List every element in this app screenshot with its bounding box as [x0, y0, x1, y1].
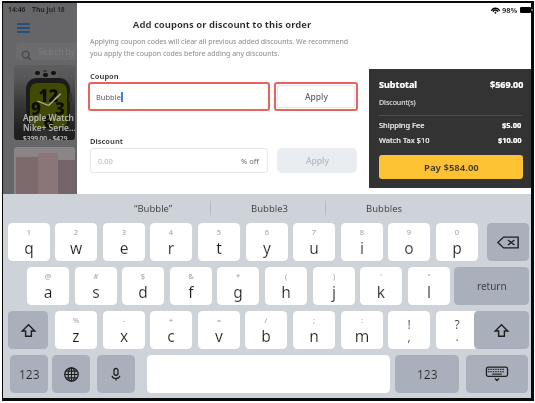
button[interactable]: )	[313, 267, 355, 305]
staticText: a	[27, 281, 69, 302]
button[interactable]: -	[103, 311, 145, 349]
button[interactable]: 2	[55, 223, 97, 261]
button[interactable]: 0.00	[90, 148, 268, 173]
staticText: Subtotal	[379, 78, 418, 90]
staticText: (	[265, 271, 307, 281]
button[interactable]: 0	[436, 223, 478, 261]
staticText: 3	[103, 227, 145, 237]
staticText: +	[150, 315, 192, 325]
staticText: 4	[150, 227, 192, 237]
staticText: e	[103, 237, 145, 258]
staticText: 2	[55, 227, 97, 237]
staticText: w	[55, 237, 97, 258]
button[interactable]: 7	[293, 223, 335, 261]
button[interactable]: +	[150, 311, 192, 349]
button[interactable]: Return	[454, 267, 529, 305]
staticText: Shipping Fee	[379, 120, 425, 130]
staticText: k	[360, 281, 402, 302]
staticText: Apple Watch	[23, 112, 74, 124]
staticText: j	[313, 281, 355, 302]
button[interactable]: @	[27, 267, 69, 305]
button[interactable]: ;	[293, 311, 335, 349]
button[interactable]: Hide keyboard	[466, 355, 528, 393]
staticText: 3	[55, 97, 65, 120]
button[interactable]: Shift	[8, 311, 48, 349]
button[interactable]: ?	[436, 311, 478, 349]
button[interactable]: “Bubble”	[95, 194, 211, 222]
staticText: ,	[388, 328, 430, 344]
staticText: l	[408, 281, 450, 302]
button[interactable]: &	[170, 267, 212, 305]
button[interactable]	[14, 147, 75, 194]
button[interactable]: Bubbles	[326, 194, 442, 222]
button[interactable]: %	[55, 311, 97, 349]
button[interactable]: =	[198, 311, 240, 349]
staticText: %	[55, 315, 97, 325]
button[interactable]: 12	[14, 65, 75, 140]
button[interactable]: 1	[8, 223, 50, 261]
button[interactable]: Backspace	[487, 223, 529, 261]
staticText: “Bubble”	[134, 202, 173, 215]
staticText: s	[75, 281, 117, 302]
staticText: Nike+ Serie...	[23, 122, 75, 134]
button[interactable]: Shift	[474, 311, 529, 349]
staticText: $5.00	[502, 120, 522, 130]
button[interactable]: Apply	[277, 148, 357, 173]
staticText: h	[265, 281, 307, 302]
staticText: ?	[436, 316, 478, 332]
button[interactable]: :	[341, 311, 383, 349]
staticText: /	[245, 315, 287, 325]
staticText: Watch Tax $10	[379, 135, 430, 145]
button[interactable]: Change language	[52, 355, 90, 393]
staticText: 0.00	[98, 156, 113, 166]
button[interactable]: Numbers	[395, 355, 459, 393]
button[interactable]: 9	[388, 223, 430, 261]
button[interactable]: 5	[198, 223, 240, 261]
staticText: Discount	[90, 136, 124, 146]
staticText: 6	[30, 110, 67, 128]
button[interactable]: "	[408, 267, 450, 305]
staticText: '	[360, 271, 402, 281]
button[interactable]: $	[122, 267, 164, 305]
button[interactable]: 4	[150, 223, 192, 261]
staticText: $399.00 - $429...	[23, 134, 73, 140]
staticText: Search by n	[38, 46, 80, 57]
staticText: Discount(s)	[379, 98, 416, 108]
button[interactable]: #	[75, 267, 117, 305]
staticText: ;	[293, 315, 335, 325]
staticText: z	[55, 325, 97, 346]
button[interactable]: Pay $584.00	[379, 155, 523, 179]
staticText: 123	[19, 366, 40, 382]
staticText: Applying coupon codes will clear all pre…	[90, 37, 356, 58]
button[interactable]: /	[245, 311, 287, 349]
staticText: 5	[198, 227, 240, 237]
button[interactable]: 8	[341, 223, 383, 261]
button[interactable]: Dictation	[97, 355, 135, 393]
button[interactable]: 6	[246, 223, 288, 261]
staticText: 8	[341, 227, 383, 237]
staticText: 14:46	[8, 5, 26, 14]
button[interactable]: 3	[103, 223, 145, 261]
button[interactable]: (	[265, 267, 307, 305]
staticText: Bubbles	[366, 202, 403, 215]
staticText: 7	[293, 227, 335, 237]
button[interactable]: Numbers	[10, 355, 48, 393]
button[interactable]: '	[360, 267, 402, 305]
staticText: m	[341, 325, 383, 346]
staticText: Pay $584.00	[424, 161, 479, 174]
button[interactable]: *	[217, 267, 259, 305]
staticText: p	[436, 237, 478, 258]
staticText: 12	[30, 84, 67, 107]
button[interactable]: Search by n	[16, 43, 80, 60]
staticText: @	[27, 271, 69, 281]
button[interactable]: Bubble3	[211, 194, 327, 222]
button[interactable]: !	[388, 311, 430, 349]
button[interactable]: Bubble	[88, 82, 270, 111]
staticText: q	[8, 237, 50, 258]
staticText: b	[245, 325, 287, 346]
staticText: c	[150, 325, 192, 346]
button[interactable]: Apply	[277, 85, 355, 108]
staticText: % off	[241, 156, 259, 166]
staticText: g	[217, 281, 259, 302]
